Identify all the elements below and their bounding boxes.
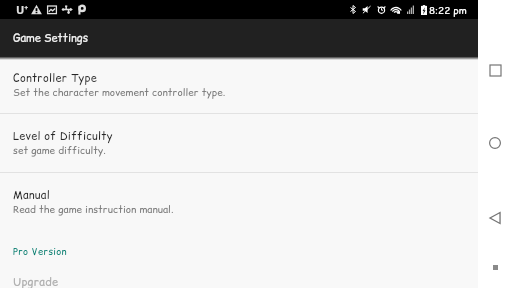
button[interactable]: Upgrade: [0, 269, 478, 288]
button[interactable]: Controller Type: [0, 60, 478, 113]
button[interactable]: Back: [483, 206, 507, 230]
staticText: Manual: [13, 187, 50, 202]
staticText: set game difficulty.: [13, 143, 106, 157]
staticText: Set the character movement controller ty…: [13, 85, 226, 99]
staticText: U⁺: [16, 2, 29, 17]
staticText: 8:22 pm: [429, 3, 467, 17]
button[interactable]: Recent apps: [483, 58, 507, 82]
button[interactable]: Level of Difficulty: [0, 118, 478, 176]
staticText: Pro Version: [13, 245, 67, 258]
staticText: Read the game instruction manual.: [13, 202, 174, 216]
button[interactable]: Pro Version: [0, 239, 478, 263]
button[interactable]: Home: [483, 131, 507, 155]
button[interactable]: Manual: [0, 177, 478, 235]
button[interactable]: Keyboard: [485, 257, 505, 277]
staticText: Upgrade: [13, 274, 59, 288]
staticText: Controller Type: [13, 70, 97, 85]
staticText: Game Settings: [13, 30, 89, 45]
staticText: Level of Difficulty: [13, 128, 113, 143]
